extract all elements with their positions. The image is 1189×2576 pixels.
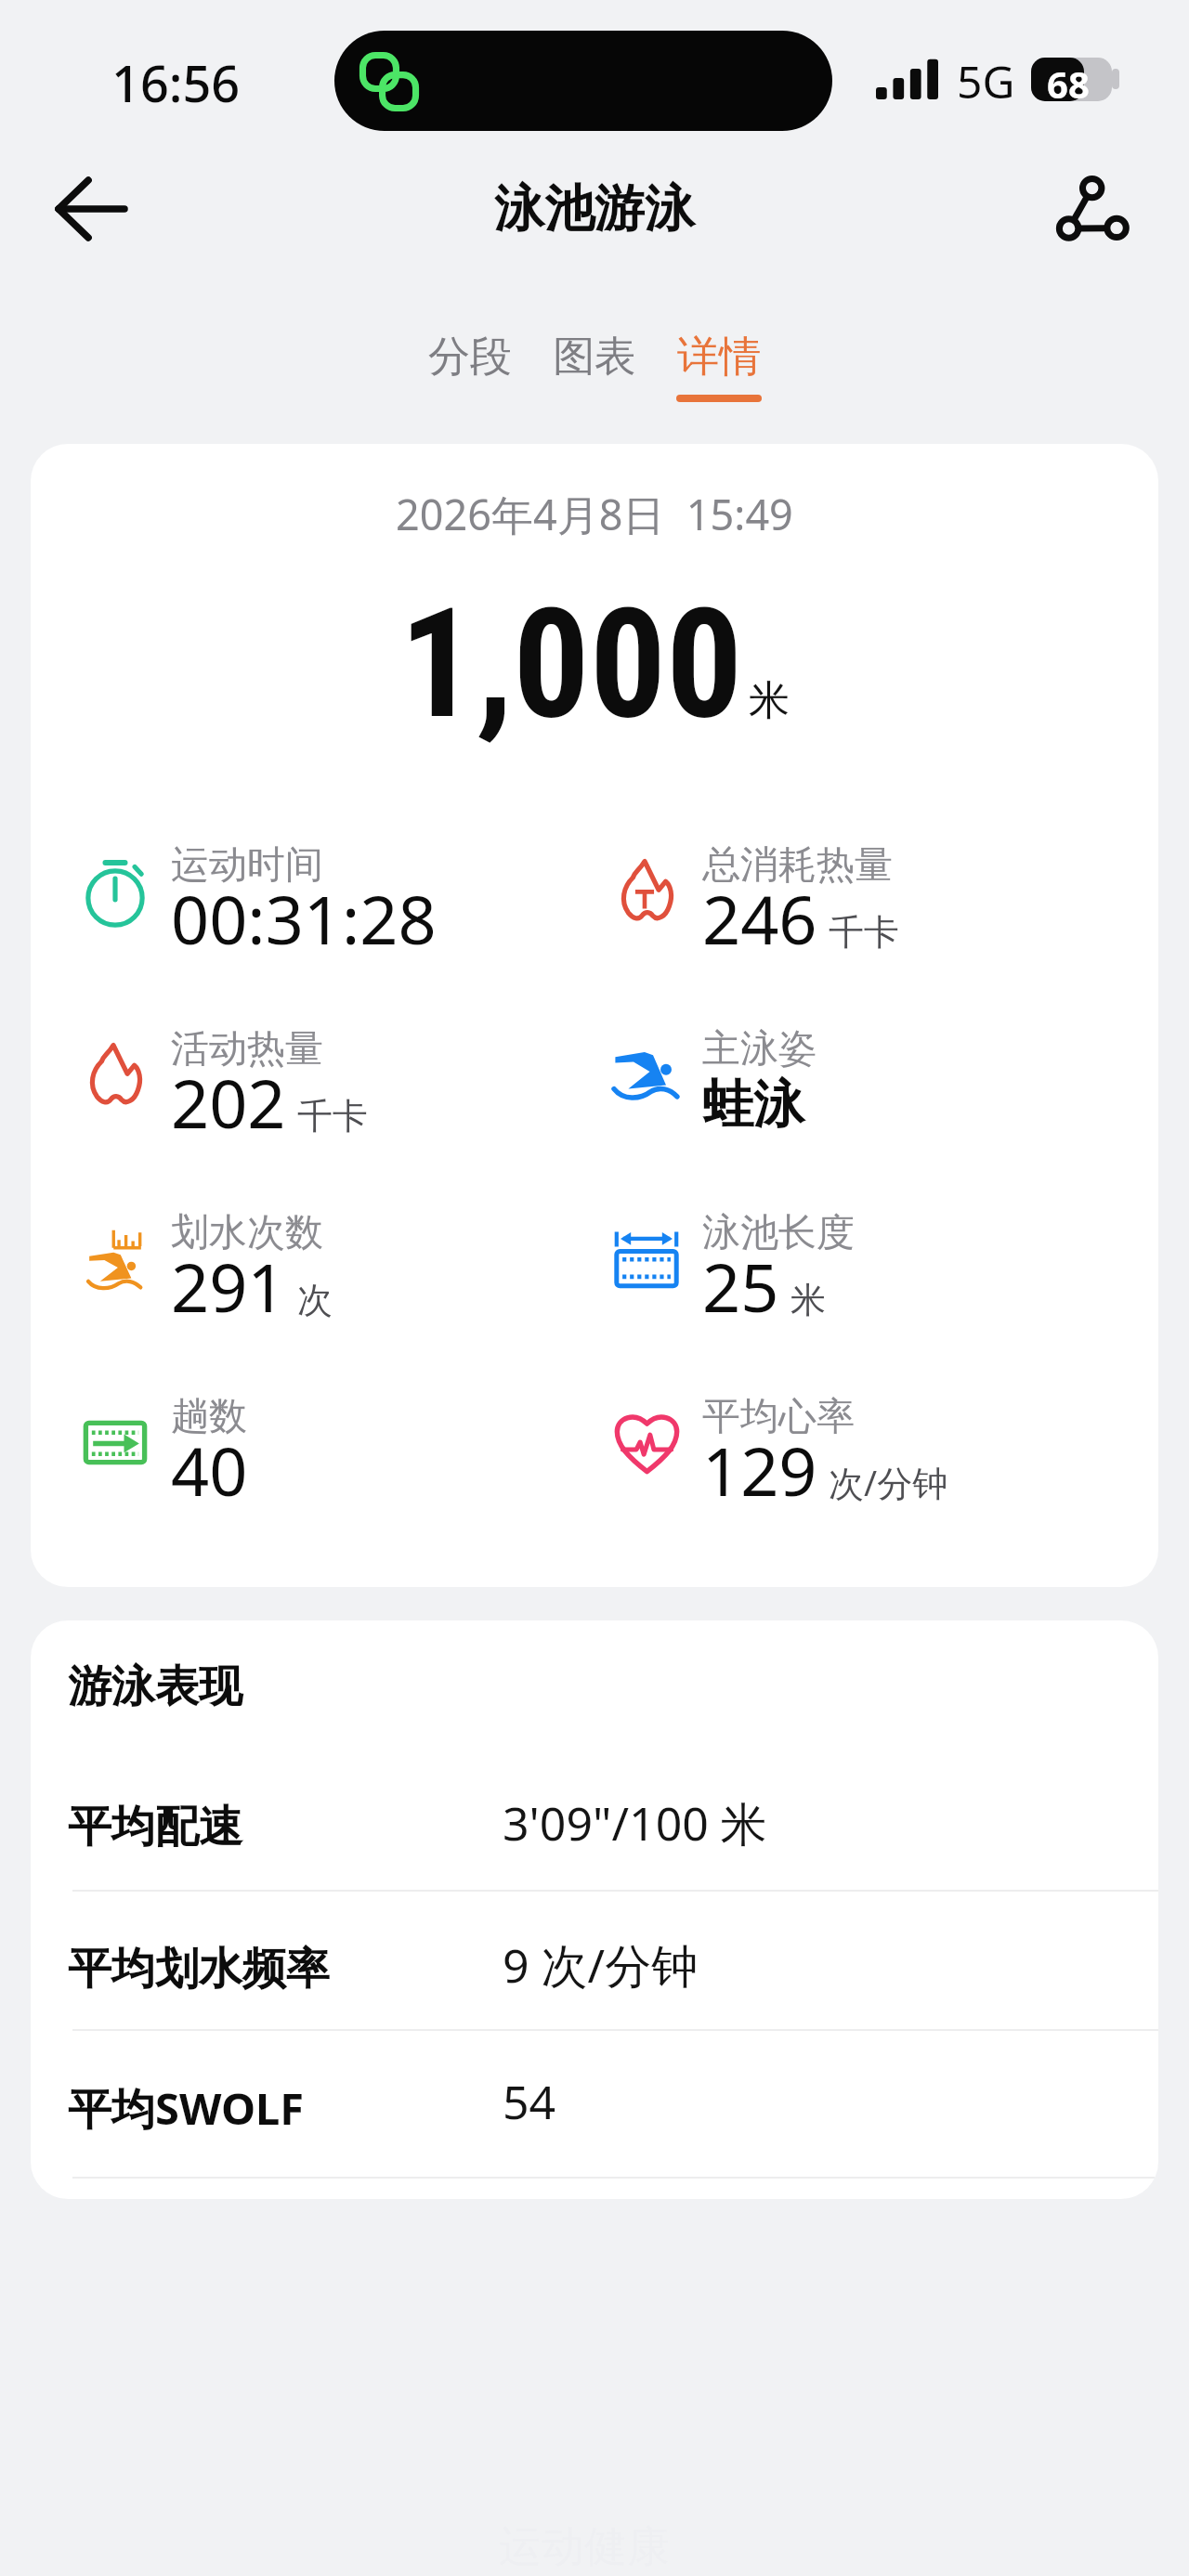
button[interactable]: 平均划水频率 — [31, 1942, 1158, 2044]
staticText: 平均SWOLF — [68, 2078, 305, 2138]
staticText: 米 — [790, 1278, 826, 1322]
button[interactable]: 划水次数 — [47, 1159, 568, 1326]
staticText: 00:31:28 — [171, 873, 437, 964]
button[interactable]: 平均配速 — [31, 1800, 1158, 1902]
button[interactable]: Back — [39, 157, 143, 261]
staticText: 68 — [1047, 59, 1090, 102]
staticText: 次/分钟 — [829, 1458, 948, 1506]
staticText: 291 — [171, 1241, 286, 1332]
staticText: 40 — [171, 1425, 248, 1516]
button[interactable]: 主泳姿 — [579, 975, 1099, 1142]
staticText: 9 次/分钟 — [503, 1933, 699, 1997]
button[interactable]: Share — [1041, 156, 1145, 260]
button[interactable]: 总消耗热量 — [579, 791, 1099, 958]
button[interactable]: 运动时间 — [47, 791, 568, 958]
staticText: 米 — [749, 675, 790, 726]
button[interactable]: 活动热量 — [47, 975, 568, 1142]
staticText: 25 — [702, 1241, 779, 1332]
button[interactable]: 趟数 — [47, 1343, 568, 1510]
staticText: 2026年4月8日 15:49 — [396, 486, 793, 542]
staticText: 3'09"/100 米 — [503, 1791, 767, 1854]
staticText: 千卡 — [297, 1094, 368, 1138]
staticText: 平均心率 — [702, 1393, 855, 1441]
staticText: 蛙泳 — [702, 1073, 804, 1137]
staticText: 划水次数 — [171, 1209, 323, 1257]
staticText: 1,000 — [399, 576, 743, 753]
staticText: 运动时间 — [171, 841, 323, 890]
staticText: 分段 — [428, 331, 512, 384]
staticText: 246 — [702, 873, 817, 964]
staticText: 主泳姿 — [702, 1025, 817, 1073]
staticText: 54 — [503, 2070, 556, 2133]
staticText: 千卡 — [829, 910, 899, 955]
staticText: 泳池游泳 — [494, 177, 695, 241]
staticText: 趟数 — [171, 1393, 247, 1441]
staticText: 次 — [297, 1278, 333, 1322]
staticText: 平均划水频率 — [68, 1942, 330, 1997]
staticText: 详情 — [677, 331, 761, 384]
staticText: 图表 — [553, 331, 636, 384]
button[interactable]: 分段 — [424, 325, 516, 408]
button[interactable]: 泳池长度 — [579, 1159, 1099, 1326]
staticText: 5G — [957, 51, 1015, 111]
button[interactable]: 图表 — [548, 325, 641, 408]
button[interactable]: 平均心率 — [579, 1343, 1099, 1510]
staticText: 游泳表现 — [68, 1659, 242, 1714]
staticText: 泳池长度 — [702, 1209, 855, 1257]
button[interactable]: 平均SWOLF — [31, 2078, 1158, 2180]
staticText: 129 — [702, 1425, 817, 1516]
staticText: 202 — [171, 1057, 286, 1148]
button[interactable]: 详情 — [673, 325, 765, 408]
staticText: 平均配速 — [68, 1800, 242, 1854]
staticText: 活动热量 — [171, 1025, 323, 1073]
staticText: 总消耗热量 — [702, 841, 893, 890]
staticText: 16:56 — [111, 48, 241, 117]
